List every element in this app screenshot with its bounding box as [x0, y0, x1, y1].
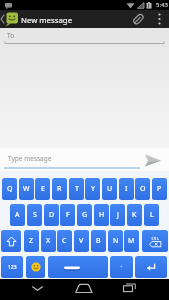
- staticText: X: [46, 236, 51, 246]
- button[interactable]: Y: [85, 178, 100, 200]
- button[interactable]: G: [77, 204, 92, 226]
- staticText: T: [75, 184, 79, 194]
- staticText: G: [82, 210, 88, 220]
- staticText: O: [140, 184, 146, 194]
- button[interactable]: Z: [24, 230, 39, 252]
- button[interactable]: T: [69, 178, 84, 200]
- button[interactable]: U: [102, 178, 117, 200]
- staticText: N: [113, 236, 119, 246]
- button[interactable]: [1, 230, 21, 252]
- staticText: J: [117, 210, 119, 220]
- button[interactable]: S: [27, 204, 42, 226]
- button[interactable]: [135, 256, 167, 278]
- button[interactable]: To: [0, 28, 169, 46]
- staticText: New message: [21, 15, 73, 26]
- staticText: F: [66, 210, 70, 220]
- button[interactable]: W: [19, 178, 34, 200]
- staticText: A: [15, 210, 20, 220]
- button[interactable]: K: [127, 204, 142, 226]
- button[interactable]: [48, 256, 108, 278]
- button[interactable]: [142, 230, 168, 252]
- button[interactable]: P: [152, 178, 167, 200]
- staticText: W: [23, 184, 30, 194]
- button[interactable]: [72, 279, 96, 300]
- staticText: S: [33, 210, 37, 220]
- staticText: Type message: [8, 154, 52, 163]
- staticText: D: [49, 210, 55, 220]
- staticText: C: [62, 236, 67, 246]
- button[interactable]: Q: [2, 178, 17, 200]
- button[interactable]: [26, 256, 45, 278]
- button[interactable]: R: [52, 178, 67, 200]
- button[interactable]: D: [44, 204, 59, 226]
- button[interactable]: H: [94, 204, 109, 226]
- button[interactable]: I: [119, 178, 134, 200]
- button[interactable]: O: [135, 178, 150, 200]
- button[interactable]: [110, 256, 133, 278]
- button[interactable]: 123: [1, 256, 23, 278]
- staticText: M: [128, 236, 135, 246]
- staticText: 5:43: [156, 1, 168, 9]
- staticText: Y: [91, 184, 95, 194]
- staticText: K: [132, 210, 137, 220]
- button[interactable]: New message: [0, 10, 110, 28]
- staticText: P: [157, 184, 162, 194]
- staticText: B: [96, 236, 101, 246]
- button[interactable]: A: [10, 204, 25, 226]
- button[interactable]: L: [144, 204, 159, 226]
- button[interactable]: [152, 10, 169, 28]
- button[interactable]: [26, 279, 50, 300]
- button[interactable]: B: [91, 230, 106, 252]
- button[interactable]: J: [110, 204, 125, 226]
- button[interactable]: N: [108, 230, 123, 252]
- staticText: Z: [29, 236, 34, 246]
- staticText: To: [7, 31, 15, 40]
- button[interactable]: [118, 279, 142, 300]
- staticText: 123: [8, 264, 17, 271]
- button[interactable]: V: [74, 230, 89, 252]
- button[interactable]: X: [41, 230, 56, 252]
- button[interactable]: [141, 148, 169, 171]
- button[interactable]: M: [124, 230, 139, 252]
- button[interactable]: [128, 11, 148, 28]
- staticText: E: [41, 184, 45, 194]
- button[interactable]: F: [60, 204, 75, 226]
- button[interactable]: E: [35, 178, 50, 200]
- staticText: H: [99, 210, 105, 220]
- staticText: Q: [7, 184, 13, 194]
- staticText: R: [57, 184, 62, 194]
- button[interactable]: C: [57, 230, 72, 252]
- staticText: L: [150, 210, 154, 220]
- staticText: V: [79, 236, 84, 246]
- staticText: I: [125, 184, 128, 194]
- staticText: U: [107, 184, 113, 194]
- button[interactable]: Type message: [0, 148, 141, 171]
